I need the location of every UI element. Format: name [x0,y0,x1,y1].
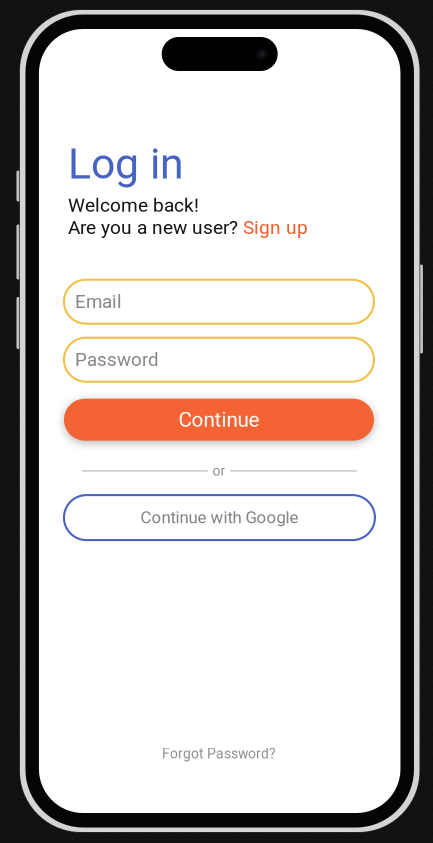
staticText: Continue [178,408,259,432]
button[interactable]: Forgot Password? [64,746,374,762]
staticText: or [212,463,225,479]
staticText: Sign up [243,216,308,239]
button[interactable]: Continue with Google [64,495,375,540]
button[interactable]: Continue [64,399,374,441]
staticText: Password [75,349,159,371]
staticText: Log in [68,139,184,189]
button[interactable]: Password [64,338,374,382]
button[interactable]: Sign up [243,216,308,239]
staticText: Welcome back! [68,194,199,216]
button[interactable]: Email [64,280,374,324]
staticText: Are you a new user? [68,216,243,239]
staticText: Forgot Password? [162,746,276,762]
staticText: Email [75,291,122,313]
staticText: Continue with Google [140,508,298,527]
